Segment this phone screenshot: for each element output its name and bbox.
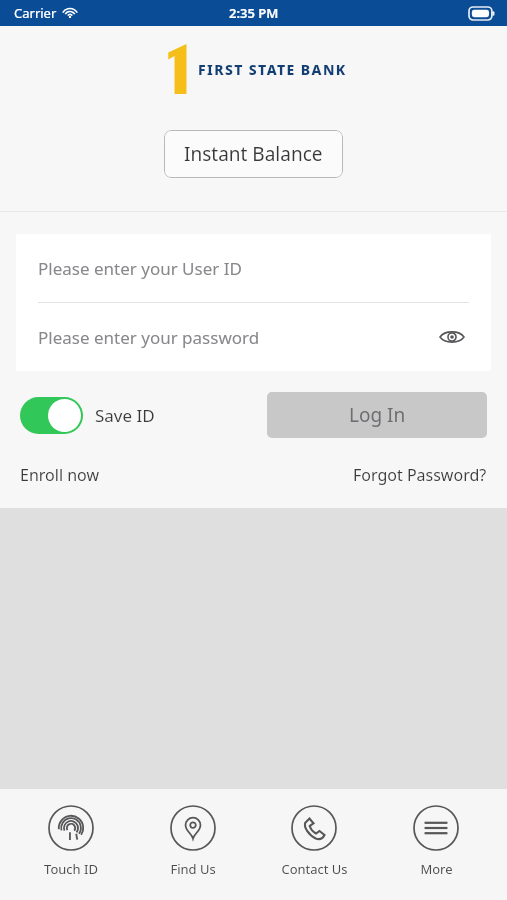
staticText: Carrier [14, 4, 57, 22]
staticText: Log In [349, 402, 406, 428]
button[interactable]: Instant Balance [164, 130, 343, 178]
button[interactable]: More [386, 803, 486, 880]
staticText: Touch ID [44, 860, 98, 878]
button[interactable]: Show password [435, 320, 469, 354]
staticText: FIRST STATE BANK [198, 60, 347, 79]
button[interactable]: Enroll now [20, 464, 99, 486]
button[interactable]: Touch ID [21, 803, 121, 880]
staticText: Instant Balance [184, 141, 323, 167]
staticText: Enroll now [20, 464, 99, 486]
staticText: 2:35 PM [229, 4, 279, 22]
staticText: Forgot Password? [353, 464, 487, 486]
staticText: Contact Us [281, 860, 348, 878]
button[interactable]: Find Us [143, 803, 243, 880]
staticText: Find Us [170, 860, 216, 878]
button[interactable]: Please enter your User ID [16, 234, 491, 302]
button[interactable]: Contact Us [264, 803, 364, 880]
button[interactable]: Log In [267, 392, 487, 438]
staticText: More [420, 860, 453, 878]
staticText: Please enter your password [38, 326, 260, 349]
button[interactable]: Please enter your password [16, 303, 491, 371]
button[interactable]: Save ID [20, 397, 155, 434]
button[interactable]: Forgot Password? [353, 464, 487, 486]
staticText: Please enter your User ID [38, 257, 242, 280]
staticText: Save ID [95, 404, 155, 427]
